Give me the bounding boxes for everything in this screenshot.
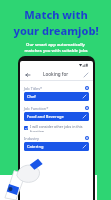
staticText: Match with <box>24 7 88 22</box>
staticText: Chef <box>27 94 36 99</box>
staticText: I will consider other jobs in this funct… <box>30 124 89 132</box>
staticText: Job Titles* <box>24 86 43 91</box>
button[interactable]: Food and Beverage <box>27 112 86 121</box>
button[interactable]: Job Titles* <box>24 84 89 92</box>
button[interactable]: I will consider other jobs in this funct… <box>24 124 89 132</box>
button[interactable]: Catering <box>27 142 86 151</box>
button[interactable]: Industry <box>24 134 89 142</box>
staticText: Industry <box>24 136 40 141</box>
staticText: your dreamjob! <box>13 23 99 38</box>
staticText: Job Function* <box>24 106 49 111</box>
button[interactable]: Job Function* <box>24 104 89 112</box>
staticText: Our smart app automatically <box>26 42 85 48</box>
staticText: Catering <box>27 144 44 149</box>
button[interactable]: Chef <box>27 92 86 101</box>
button[interactable]: Edit <box>82 71 89 78</box>
staticText: matches you with suitable jobs <box>24 48 88 54</box>
staticText: Food and Beverage <box>27 114 64 119</box>
staticText: Looking for <box>43 71 69 77</box>
button[interactable]: Back <box>24 71 31 78</box>
button[interactable]: Back <box>24 68 89 80</box>
